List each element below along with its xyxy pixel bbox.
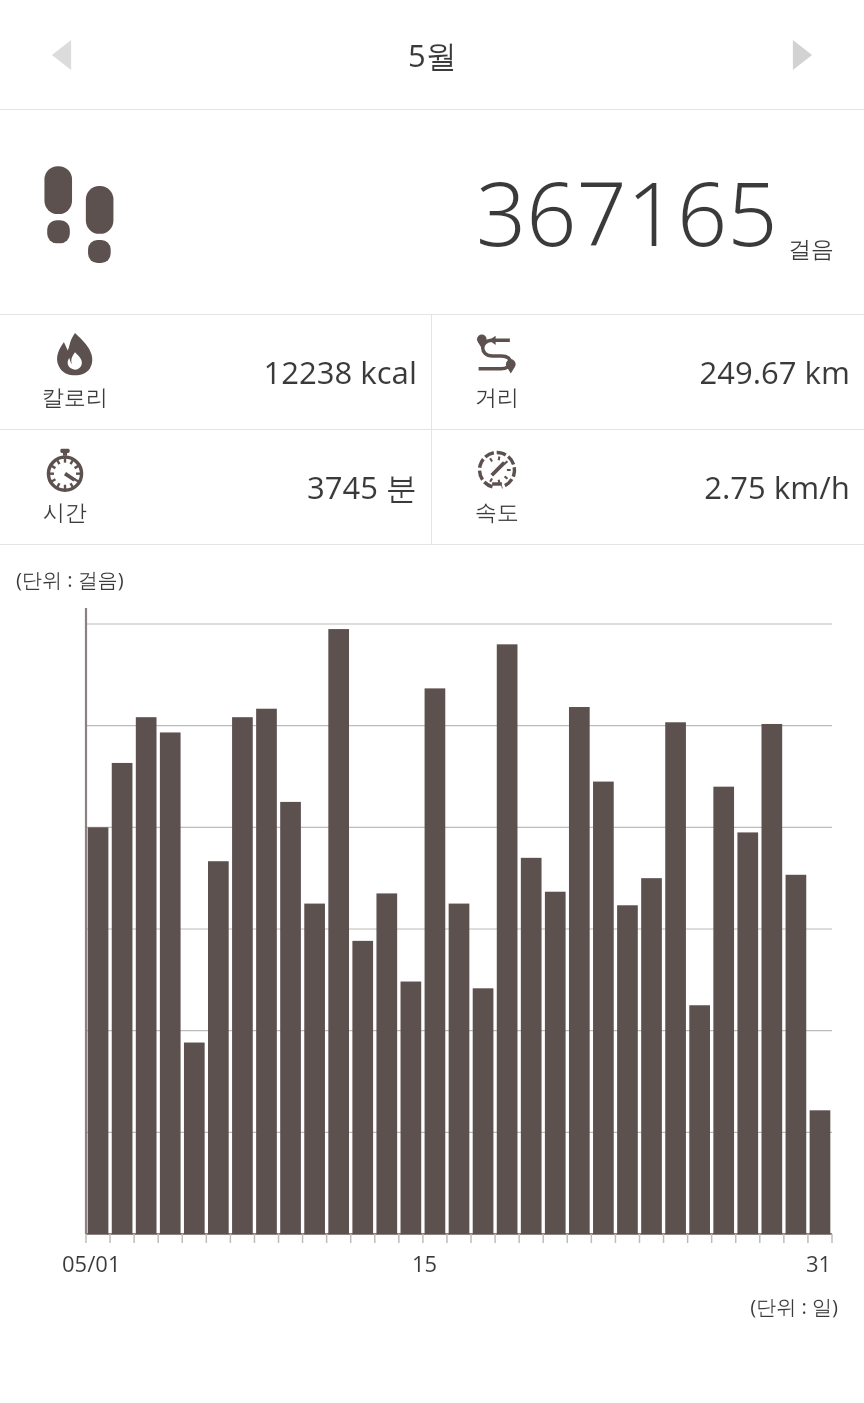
staticText: 05/01 xyxy=(62,1248,121,1278)
staticText: 시간 xyxy=(43,499,87,527)
button[interactable]: 367165 xyxy=(0,110,864,314)
staticText: 걸음 xyxy=(788,235,834,264)
staticText: 367165 xyxy=(476,152,778,272)
staticText: 15 xyxy=(412,1248,438,1278)
button[interactable]: Previous month xyxy=(33,28,91,82)
staticText: (단위 : 일) xyxy=(0,1293,838,1320)
staticText: 칼로리 xyxy=(42,384,108,412)
staticText: 31 xyxy=(806,1248,832,1278)
staticText: (단위 : 걸음) xyxy=(16,566,124,593)
staticText: 속도 xyxy=(475,499,519,527)
staticText: 2.75 km/h xyxy=(522,466,850,508)
button[interactable]: 시간 xyxy=(0,430,431,544)
staticText: 거리 xyxy=(475,384,519,412)
button[interactable]: 거리 xyxy=(432,315,864,429)
staticText: 5월 xyxy=(408,34,457,76)
button[interactable]: Next month xyxy=(773,28,831,82)
staticText: 12238 kcal xyxy=(90,351,417,393)
button[interactable]: 칼로리 xyxy=(0,315,431,429)
button[interactable]: 속도 xyxy=(432,430,864,544)
staticText: 3745 분 xyxy=(90,466,417,508)
staticText: 249.67 km xyxy=(522,351,850,393)
